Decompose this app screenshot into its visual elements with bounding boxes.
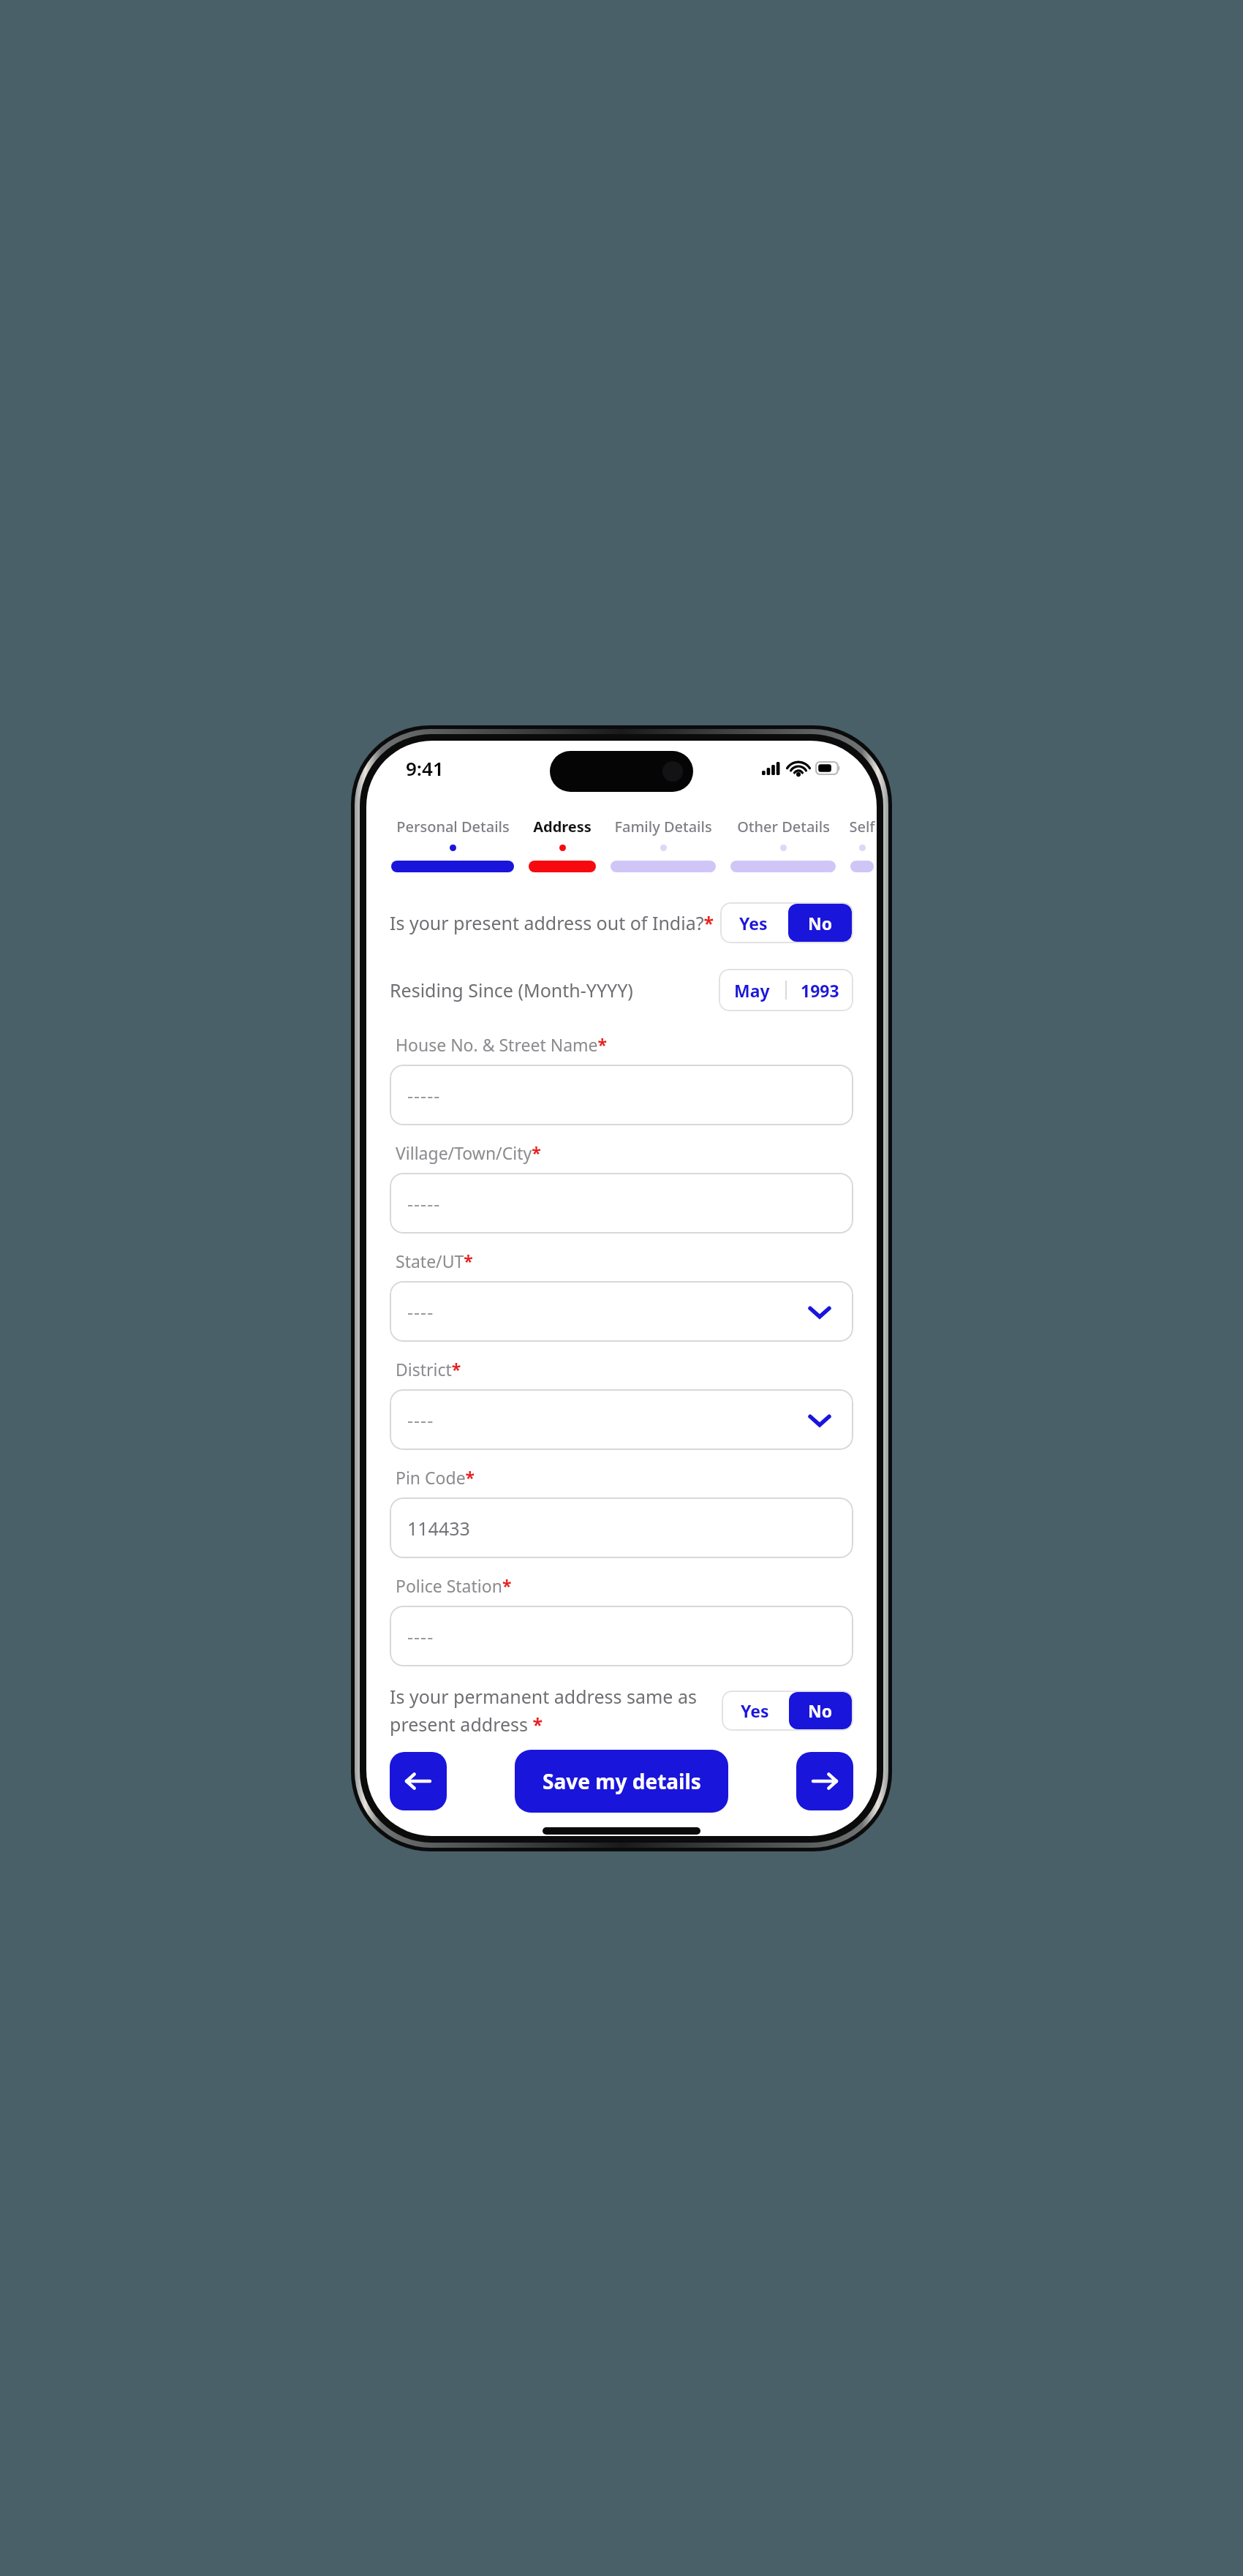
staticText: Police Station* <box>396 1574 512 1597</box>
staticText: Residing Since (Month-YYYY) <box>390 978 719 1002</box>
button[interactable]: ---- <box>390 1606 853 1666</box>
staticText: ----- <box>407 1083 441 1108</box>
staticText: ---- <box>407 1299 434 1324</box>
staticText: Save my details <box>543 1767 701 1795</box>
button[interactable]: Yes <box>720 902 787 943</box>
staticText: 114433 <box>407 1516 470 1541</box>
button[interactable]: Save my details <box>515 1750 728 1813</box>
button[interactable]: ---- <box>390 1389 853 1450</box>
button[interactable]: Self D <box>847 817 877 872</box>
staticText: Yes <box>739 912 768 934</box>
staticText: 9:41 <box>406 755 444 781</box>
staticText: ---- <box>407 1624 434 1649</box>
button[interactable]: Previous <box>390 1752 447 1810</box>
staticText: Is your permanent address same as presen… <box>390 1684 710 1737</box>
staticText: Pin Code* <box>396 1466 475 1489</box>
button[interactable]: 114433 <box>390 1497 853 1558</box>
button[interactable]: Open State/UT dropdown <box>805 1297 834 1326</box>
button[interactable]: Address <box>526 817 599 872</box>
button[interactable]: Yes <box>722 1691 787 1731</box>
button[interactable]: No <box>789 1692 852 1729</box>
staticText: 1993 <box>801 979 839 1002</box>
button[interactable]: Family Details <box>608 817 719 872</box>
staticText: ----- <box>407 1191 441 1216</box>
staticText: Village/Town/City* <box>396 1141 541 1164</box>
staticText: No <box>808 912 833 934</box>
staticText: Address <box>533 817 592 836</box>
staticText: Is your present address out of India?* <box>390 910 720 935</box>
button[interactable]: ----- <box>390 1065 853 1125</box>
staticText: Family Details <box>614 817 712 836</box>
button[interactable]: ----- <box>390 1173 853 1234</box>
staticText: House No. & Street Name* <box>396 1033 608 1056</box>
staticText: State/UT* <box>396 1250 473 1272</box>
staticText: District* <box>396 1358 461 1380</box>
staticText: Personal Details <box>396 817 510 836</box>
button[interactable]: May <box>719 969 853 1011</box>
button[interactable]: ---- <box>390 1281 853 1342</box>
staticText: ---- <box>407 1408 434 1432</box>
button[interactable]: Other Details <box>728 817 839 872</box>
staticText: May <box>734 979 770 1002</box>
staticText: Yes <box>741 1699 769 1722</box>
button[interactable]: No <box>788 904 852 942</box>
button[interactable]: Next <box>796 1752 853 1810</box>
button[interactable]: Open District dropdown <box>805 1405 834 1435</box>
staticText: Other Details <box>737 817 830 836</box>
button[interactable]: Personal Details <box>388 817 517 872</box>
staticText: Self D <box>847 817 877 836</box>
staticText: No <box>808 1699 833 1722</box>
